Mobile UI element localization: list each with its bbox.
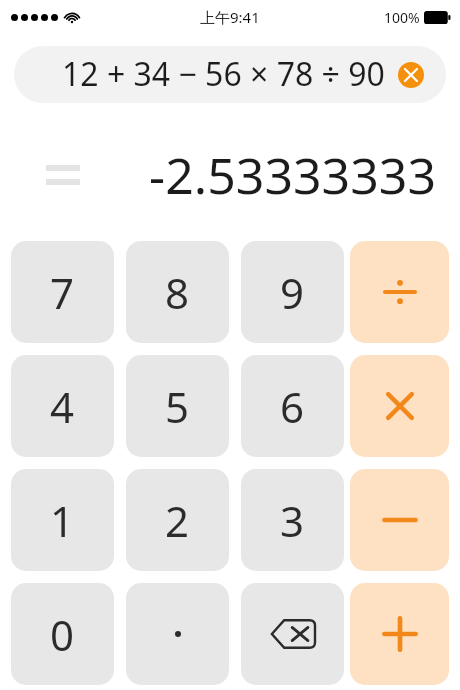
staticText: 5 [165,378,190,435]
button[interactable]: Subtract [350,469,449,571]
button[interactable]: 8 [126,241,229,343]
button[interactable]: Clear [398,62,424,88]
staticText: 6 [280,378,305,435]
staticText: 4 [50,378,75,435]
staticText: 9 [280,264,305,321]
button[interactable]: 9 [241,241,344,343]
button[interactable]: 0 [11,583,114,685]
button[interactable]: Backspace [241,583,344,685]
button[interactable]: 2 [126,469,229,571]
button[interactable]: 6 [241,355,344,457]
button[interactable]: Add [350,583,449,685]
staticText: -2.53333333 [149,141,436,209]
staticText: 100% [384,8,420,27]
staticText: 8 [165,264,190,321]
button[interactable] [126,583,229,685]
staticText: 12 + 34 − 56 × 78 ÷ 90 [62,52,385,96]
button[interactable]: 1 [11,469,114,571]
button[interactable]: 5 [126,355,229,457]
button[interactable]: Divide [350,241,449,343]
button[interactable]: 7 [11,241,114,343]
button[interactable]: Multiply [350,355,449,457]
staticText: 上午9:41 [200,7,260,27]
staticText: 3 [280,492,305,549]
staticText: 2 [165,492,190,549]
staticText: 7 [50,264,75,321]
button[interactable]: 3 [241,469,344,571]
staticText: 1 [50,492,75,549]
button[interactable]: 12 + 34 − 56 × 78 ÷ 90 [14,46,446,103]
staticText: 0 [50,606,75,663]
button[interactable]: 4 [11,355,114,457]
